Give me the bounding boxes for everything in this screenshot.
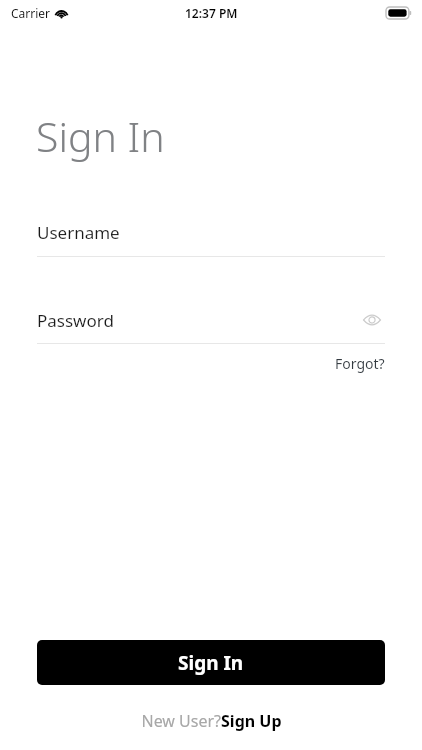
staticText: Forgot?: [335, 354, 385, 373]
button[interactable]: Sign In: [37, 640, 385, 685]
button[interactable]: New User?Sign Up: [141, 710, 282, 732]
button[interactable]: Show password: [359, 307, 385, 333]
staticText: New User?Sign Up: [141, 710, 282, 732]
staticText: Username: [37, 221, 120, 244]
staticText: Sign In: [36, 108, 165, 164]
button[interactable]: Username: [37, 221, 385, 257]
button[interactable]: Forgot?: [335, 354, 385, 373]
staticText: Password: [37, 309, 359, 332]
button[interactable]: Password: [37, 307, 385, 333]
staticText: 12:37 PM: [185, 5, 238, 21]
staticText: Sign In: [178, 650, 244, 676]
staticText: Carrier: [11, 5, 51, 21]
